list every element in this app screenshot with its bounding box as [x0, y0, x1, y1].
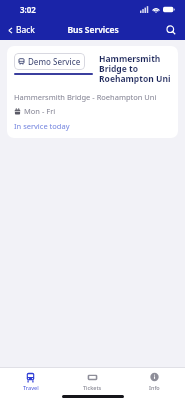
button[interactable]: Demo Service — [7, 46, 178, 138]
button[interactable]: Back — [4, 22, 38, 38]
staticText: Info — [149, 384, 160, 391]
staticText: Back — [16, 24, 35, 36]
button[interactable]: Travel — [0, 368, 61, 392]
button[interactable]: Tickets — [61, 368, 123, 392]
staticText: Tickets — [83, 384, 102, 391]
button[interactable]: In service today — [14, 121, 70, 131]
staticText: Travel — [23, 384, 39, 391]
staticText: 3:02 — [20, 4, 36, 15]
staticText: Hammersmith Bridge - Roehampton Uni — [14, 92, 157, 102]
staticText: Hammersmith Bridge to Roehampton Uni — [99, 53, 171, 85]
staticText: Bus Services — [67, 24, 119, 36]
button[interactable]: Info — [123, 368, 185, 392]
button[interactable]: Search — [163, 22, 179, 38]
staticText: Mon - Fri — [24, 106, 56, 116]
staticText: Demo Service — [28, 56, 81, 67]
